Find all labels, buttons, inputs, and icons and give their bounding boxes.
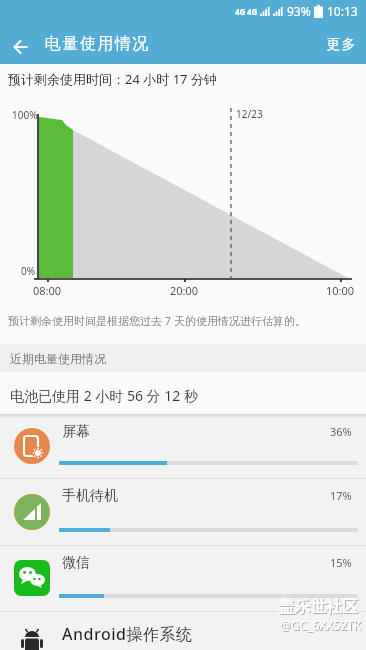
staticText: 0%: [21, 264, 36, 278]
button[interactable]: 更多: [326, 36, 356, 54]
staticText: 盖乐世社区: [279, 598, 359, 618]
staticText: 10:00: [326, 283, 355, 298]
staticText: 10:13: [327, 3, 358, 19]
staticText: 17%: [330, 488, 352, 503]
staticText: 微信: [62, 554, 90, 572]
staticText: 20:00: [170, 283, 199, 298]
staticText: 电池已使用 2 小时 56 分 12 秒: [10, 386, 198, 405]
staticText: 15%: [330, 555, 352, 570]
button[interactable]: 屏幕: [0, 415, 366, 478]
button[interactable]: [0, 612, 366, 650]
button[interactable]: 微信: [0, 546, 366, 611]
staticText: 12/23: [236, 107, 263, 121]
staticText: 盖乐世社区: [278, 597, 358, 617]
staticText: 预计剩余使用时间：24 小时 17 分钟: [8, 70, 217, 88]
staticText: 近期电量使用情况: [10, 351, 106, 366]
staticText: 08:00: [33, 283, 62, 298]
staticText: 36%: [330, 424, 352, 439]
staticText: 100%: [12, 108, 38, 122]
staticText: 4G: [247, 6, 258, 17]
staticText: 预计剩余使用时间是根据您过去 7 天的使用情况进行估算的。: [8, 313, 307, 328]
staticText: 手机待机: [62, 487, 118, 505]
button[interactable]: [7, 33, 35, 61]
staticText: Android操作系统: [62, 623, 193, 645]
staticText: 电量使用情况: [44, 34, 149, 54]
staticText: 更多: [326, 36, 356, 54]
staticText: @GC_6XX52TK: [280, 617, 362, 633]
button[interactable]: 手机待机: [0, 479, 366, 545]
staticText: 93%: [287, 3, 311, 19]
staticText: 屏幕: [62, 423, 90, 441]
staticText: @GC_6XX52TK: [281, 618, 363, 634]
staticText: 4G: [235, 6, 246, 17]
button[interactable]: [0, 372, 366, 414]
